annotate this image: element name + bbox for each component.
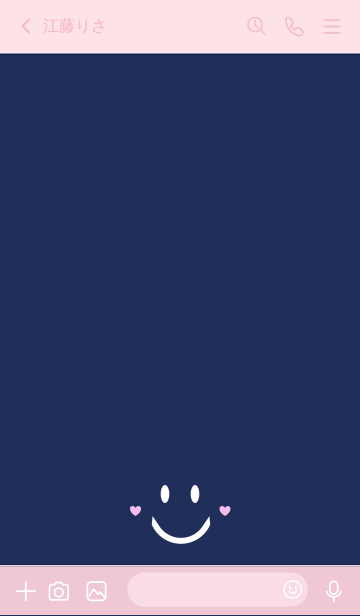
button[interactable]: Search bbox=[237, 0, 275, 52]
button[interactable]: Photos bbox=[78, 569, 114, 613]
button[interactable]: Message input bbox=[127, 572, 308, 607]
button[interactable]: More bbox=[8, 569, 44, 613]
button[interactable]: 江藤りさ bbox=[43, 0, 107, 52]
staticText: 江藤りさ bbox=[43, 16, 107, 36]
button[interactable]: Voice message bbox=[318, 569, 350, 613]
button[interactable]: Back bbox=[9, 0, 43, 52]
button[interactable]: Menu bbox=[313, 0, 351, 52]
button[interactable]: Camera bbox=[41, 569, 77, 613]
button[interactable]: Call bbox=[275, 0, 313, 52]
